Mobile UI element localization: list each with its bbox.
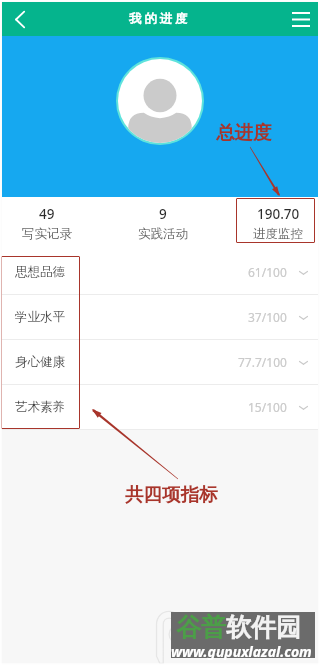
staticText: 61/100 (248, 264, 287, 280)
staticText: 实践活动 (138, 226, 188, 242)
button[interactable]: 9 (92, 197, 234, 250)
staticText: 15/100 (248, 399, 287, 415)
staticText: 我的进度 (129, 11, 191, 27)
staticText: 49 (39, 205, 55, 223)
staticText: 共四项指标 (125, 483, 218, 506)
button[interactable]: Back (5, 2, 35, 36)
button[interactable]: 49 (2, 197, 92, 250)
staticText: 学业水平 (15, 309, 65, 325)
staticText: 谷普 (176, 612, 226, 643)
staticText: www.gupuxlazal.com (171, 642, 315, 661)
staticText: 写实记录 (22, 226, 72, 242)
button[interactable]: 190.70 (234, 197, 320, 250)
staticText: 艺术素养 (15, 399, 65, 415)
staticText: 总进度 (216, 121, 272, 144)
staticText: 身心健康 (15, 354, 65, 370)
staticText: 思想品德 (15, 264, 65, 280)
staticText: 9 (159, 205, 167, 223)
staticText: 77.7/100 (238, 354, 287, 370)
button[interactable]: 身心健康 (2, 340, 318, 384)
staticText: 190.70 (257, 205, 300, 223)
button[interactable]: 艺术素养 (2, 385, 318, 429)
staticText: 37/100 (248, 309, 287, 325)
button[interactable]: 学业水平 (2, 295, 318, 339)
button[interactable]: Menu (286, 2, 316, 36)
staticText: 软件园 (226, 612, 301, 643)
button[interactable]: 思想品德 (2, 250, 318, 294)
staticText: 进度监控 (253, 226, 303, 242)
